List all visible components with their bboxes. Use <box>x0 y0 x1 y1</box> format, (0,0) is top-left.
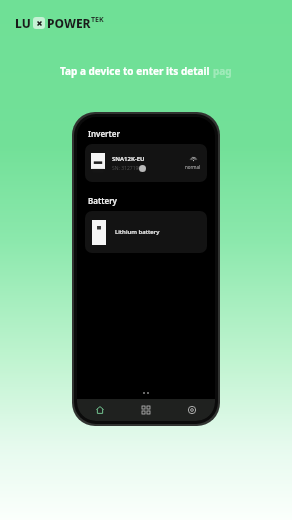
staticText: TEK <box>91 15 104 25</box>
staticText: POWER <box>47 15 91 31</box>
button[interactable]: Settings <box>169 399 215 421</box>
staticText: SNA12K-EU <box>112 155 145 163</box>
staticText: Lithium battery <box>115 228 160 236</box>
staticText: Inverter <box>88 128 120 139</box>
staticText: Tap a device to enter its detail <box>60 64 213 78</box>
staticText: pag <box>213 64 232 78</box>
other: Signal normal <box>190 156 197 163</box>
staticText: normal <box>185 164 201 170</box>
button[interactable]: Home <box>77 399 123 421</box>
button[interactable]: Lithium battery <box>85 211 207 253</box>
button[interactable]: Devices <box>123 399 169 421</box>
staticText: SN: 3127190 <box>112 165 142 172</box>
staticText: LU <box>15 15 31 31</box>
staticText: Battery <box>88 195 117 206</box>
button[interactable]: SNA12K-EU <box>85 144 207 182</box>
button[interactable]: LU <box>15 15 104 31</box>
